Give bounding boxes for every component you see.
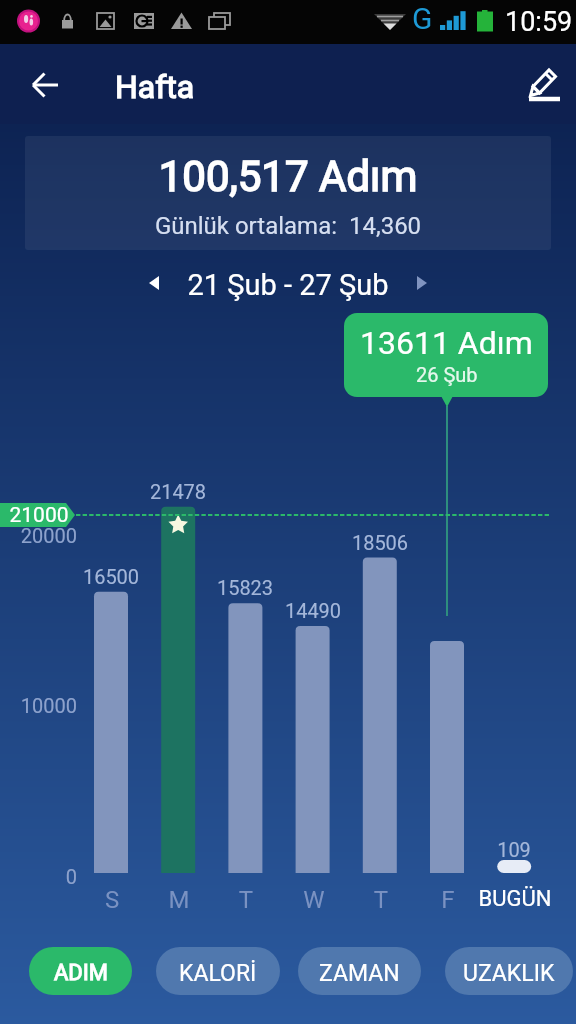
staticText: F bbox=[393, 886, 503, 914]
staticText: T bbox=[191, 886, 301, 914]
button[interactable]: Next week bbox=[400, 261, 444, 305]
button[interactable]: Edit bbox=[518, 51, 570, 103]
staticText: 10:59 bbox=[505, 6, 573, 38]
button[interactable]: 100,517 Adım bbox=[25, 136, 551, 250]
staticText: 14490 bbox=[263, 599, 363, 622]
staticText: T bbox=[326, 886, 436, 914]
staticText: 10000 bbox=[0, 694, 77, 717]
staticText: G bbox=[412, 1, 433, 36]
staticText: 13611 Adım bbox=[360, 324, 533, 362]
staticText: 0 bbox=[0, 865, 77, 888]
button[interactable]: Back bbox=[22, 61, 68, 107]
staticText: 21 Şub - 27 Şub bbox=[138, 268, 438, 302]
staticText: W bbox=[259, 886, 369, 914]
staticText: 21000 bbox=[6, 503, 72, 528]
staticText: M bbox=[124, 886, 234, 914]
staticText: Günlük ortalama: 14,360 bbox=[25, 212, 551, 240]
button[interactable]: UZAKLIK bbox=[445, 947, 573, 995]
staticText: S bbox=[57, 886, 167, 914]
button[interactable]: KALORİ bbox=[156, 947, 280, 995]
staticText: 16500 bbox=[61, 565, 161, 588]
staticText: UZAKLIK bbox=[463, 960, 555, 987]
button[interactable]: ZAMAN bbox=[298, 947, 421, 995]
staticText: 109 bbox=[464, 838, 564, 861]
staticText: 21478 bbox=[128, 480, 228, 503]
button[interactable]: 13611 Adım bbox=[344, 313, 548, 397]
staticText: ADIM bbox=[54, 960, 108, 986]
staticText: Hafta bbox=[115, 68, 195, 106]
staticText: 20000 bbox=[0, 524, 77, 547]
staticText: 26 Şub bbox=[416, 363, 478, 386]
staticText: KALORİ bbox=[179, 960, 257, 987]
staticText: BUGÜN bbox=[460, 886, 570, 912]
staticText: ZAMAN bbox=[319, 960, 400, 987]
staticText: 18506 bbox=[330, 531, 430, 554]
staticText: 15823 bbox=[195, 576, 295, 599]
button[interactable]: Previous week bbox=[132, 261, 176, 305]
button[interactable]: ADIM bbox=[29, 947, 132, 995]
staticText: 100,517 Adım bbox=[25, 152, 551, 201]
